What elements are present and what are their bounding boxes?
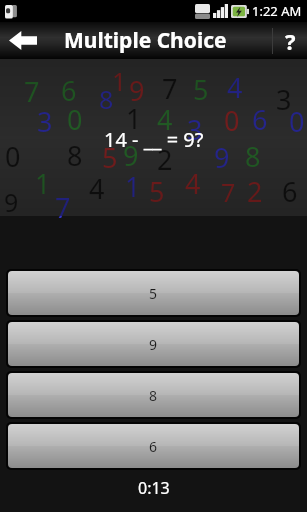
staticText: 6 (149, 437, 158, 456)
staticText: 9 (214, 139, 230, 176)
button[interactable]: 6 (8, 424, 299, 468)
staticText: 8 (245, 138, 261, 175)
staticText: 9 (123, 137, 139, 174)
staticText: 5 (102, 139, 118, 176)
staticText: 1 (126, 100, 142, 137)
staticText: 3 (37, 103, 53, 140)
button[interactable]: 5 (8, 271, 299, 315)
staticText: 7 (221, 175, 236, 209)
staticText: ? (285, 26, 296, 56)
staticText: 4 (185, 165, 201, 202)
staticText: 14 - __ = 9? (104, 126, 204, 153)
staticText: 1 (125, 168, 141, 205)
staticText: 8 (149, 386, 158, 405)
staticText: 5 (193, 71, 209, 108)
staticText: 0 (224, 102, 240, 139)
staticText: 0:13 (138, 477, 170, 499)
staticText: 7 (55, 189, 71, 226)
staticText: 8 (67, 137, 83, 174)
staticText: 2 (247, 173, 263, 210)
staticText: 2 (157, 141, 173, 178)
button[interactable]: Help (273, 22, 307, 59)
staticText: 3 (276, 81, 292, 118)
staticText: 7 (24, 73, 40, 110)
staticText: 1 (35, 165, 51, 202)
staticText: 1 (112, 64, 127, 98)
staticText: 5 (149, 173, 165, 210)
staticText: 0 (289, 103, 305, 140)
staticText: 4 (89, 170, 105, 207)
staticText: 7 (162, 70, 178, 107)
staticText: 6 (282, 173, 298, 210)
staticText: 4 (157, 101, 173, 138)
staticText: 0 (5, 138, 21, 175)
staticText: 8 (99, 82, 114, 116)
staticText: 6 (252, 101, 268, 138)
staticText: 0 (67, 101, 83, 138)
staticText: 9 (4, 185, 19, 219)
button[interactable]: 8 (8, 373, 299, 417)
staticText: 5 (149, 284, 158, 303)
staticText: 9 (149, 335, 158, 354)
staticText: 4 (227, 69, 243, 106)
staticText: 3 (187, 111, 203, 148)
staticText: 6 (61, 72, 77, 109)
staticText: 9 (129, 72, 145, 109)
staticText: Multiple Choice (64, 26, 227, 55)
staticText: 1:22 AM (252, 2, 302, 20)
button[interactable]: Back (0, 22, 46, 59)
button[interactable]: 9 (8, 322, 299, 366)
